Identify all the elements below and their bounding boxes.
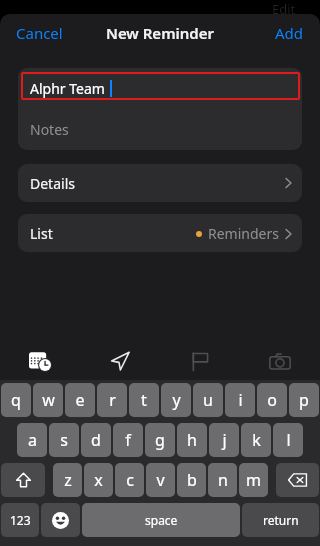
staticText: n bbox=[218, 469, 228, 491]
button[interactable]: Add photo bbox=[240, 342, 320, 380]
staticText: p bbox=[299, 389, 309, 411]
button[interactable]: l bbox=[273, 423, 303, 457]
staticText: List bbox=[30, 224, 53, 243]
button[interactable]: a bbox=[17, 423, 47, 457]
staticText: Edit bbox=[272, 0, 296, 18]
button[interactable]: Add flag bbox=[160, 342, 240, 380]
button[interactable]: q bbox=[1, 383, 31, 417]
button[interactable]: Schedule date and time bbox=[0, 342, 80, 380]
staticText: j bbox=[222, 429, 227, 451]
button[interactable]: Shift bbox=[1, 463, 45, 497]
staticText: return bbox=[263, 512, 299, 528]
button[interactable]: o bbox=[257, 383, 287, 417]
button[interactable]: x bbox=[84, 463, 113, 497]
button[interactable]: j bbox=[209, 423, 239, 457]
button[interactable]: r bbox=[97, 383, 127, 417]
staticText: g bbox=[155, 429, 165, 451]
staticText: Notes bbox=[30, 120, 69, 139]
staticText: r bbox=[109, 389, 116, 411]
button[interactable]: h bbox=[177, 423, 207, 457]
staticText: e bbox=[75, 389, 85, 411]
staticText: v bbox=[156, 469, 165, 491]
button[interactable]: t bbox=[129, 383, 159, 417]
button[interactable]: b bbox=[177, 463, 206, 497]
staticText: i bbox=[238, 389, 243, 411]
staticText: Details bbox=[30, 174, 75, 193]
button[interactable]: s bbox=[49, 423, 79, 457]
button[interactable]: Alphr Team bbox=[18, 68, 302, 109]
staticText: c bbox=[126, 469, 134, 491]
button[interactable]: n bbox=[208, 463, 237, 497]
button[interactable]: d bbox=[81, 423, 111, 457]
staticText: Add bbox=[275, 23, 304, 43]
button[interactable]: i bbox=[225, 383, 255, 417]
button[interactable]: c bbox=[115, 463, 144, 497]
staticText: Cancel bbox=[16, 23, 63, 43]
button[interactable]: p bbox=[289, 383, 319, 417]
staticText: Alphr Team bbox=[30, 79, 105, 98]
button[interactable]: v bbox=[146, 463, 175, 497]
staticText: o bbox=[267, 389, 277, 411]
staticText: d bbox=[91, 429, 101, 451]
button[interactable]: w bbox=[33, 383, 63, 417]
staticText: space bbox=[145, 512, 178, 528]
staticText: f bbox=[125, 429, 131, 451]
button[interactable]: space bbox=[82, 503, 240, 537]
button[interactable]: y bbox=[161, 383, 191, 417]
staticText: l bbox=[286, 429, 291, 451]
button[interactable]: Add bbox=[267, 17, 312, 49]
button[interactable]: Cancel bbox=[8, 17, 71, 49]
staticText: t bbox=[141, 389, 147, 411]
staticText: Reminders bbox=[208, 224, 279, 243]
staticText: q bbox=[11, 389, 21, 411]
button[interactable]: Backspace bbox=[276, 463, 319, 497]
staticText: h bbox=[187, 429, 197, 451]
staticText: b bbox=[187, 469, 197, 491]
staticText: 123 bbox=[10, 512, 31, 528]
staticText: w bbox=[42, 389, 55, 411]
staticText: a bbox=[28, 429, 37, 451]
button[interactable]: Notes bbox=[18, 109, 302, 150]
button[interactable]: e bbox=[65, 383, 95, 417]
staticText: k bbox=[252, 429, 261, 451]
staticText: x bbox=[94, 469, 103, 491]
button[interactable]: g bbox=[145, 423, 175, 457]
staticText: New Reminder bbox=[106, 23, 215, 43]
button[interactable]: f bbox=[113, 423, 143, 457]
button[interactable]: 123 bbox=[1, 503, 39, 537]
staticText: m bbox=[246, 469, 261, 491]
staticText: s bbox=[60, 429, 68, 451]
staticText: u bbox=[203, 389, 213, 411]
button[interactable]: Emoji bbox=[41, 503, 80, 537]
button[interactable]: Add location bbox=[80, 342, 160, 380]
button[interactable]: return bbox=[242, 503, 319, 537]
staticText: z bbox=[64, 469, 72, 491]
staticText: y bbox=[172, 389, 181, 411]
button[interactable]: Details bbox=[18, 164, 302, 202]
button[interactable]: List bbox=[18, 214, 302, 252]
button[interactable]: m bbox=[239, 463, 268, 497]
button[interactable]: z bbox=[53, 463, 82, 497]
button[interactable]: u bbox=[193, 383, 223, 417]
button[interactable]: k bbox=[241, 423, 271, 457]
